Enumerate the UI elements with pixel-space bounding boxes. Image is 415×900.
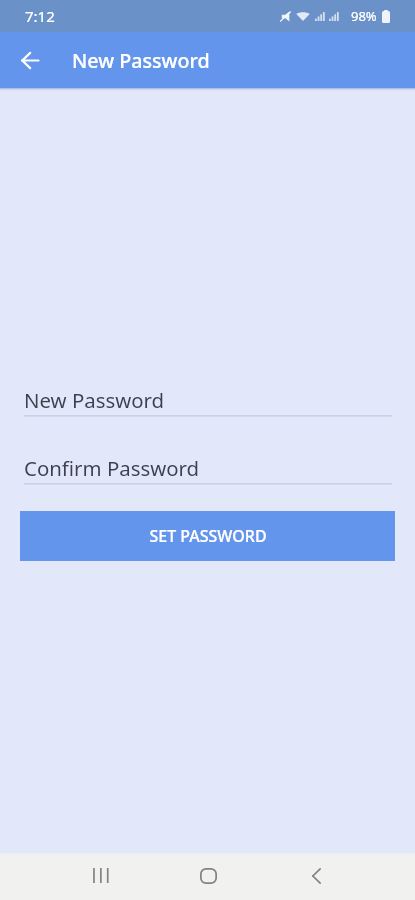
button[interactable]: Back bbox=[11, 41, 49, 79]
staticText: SET PASSWORD bbox=[149, 525, 267, 547]
button[interactable]: New Password bbox=[24, 386, 392, 418]
button[interactable]: Recent apps bbox=[70, 853, 130, 900]
button[interactable]: Confirm Password bbox=[24, 454, 392, 486]
staticText: Confirm Password bbox=[24, 454, 200, 482]
staticText: New Password bbox=[24, 386, 165, 414]
staticText: 98% bbox=[351, 7, 377, 25]
button[interactable]: SET PASSWORD bbox=[20, 511, 395, 561]
button[interactable]: Home bbox=[178, 853, 238, 900]
staticText: 7:12 bbox=[25, 6, 55, 26]
staticText: New Password bbox=[72, 47, 210, 74]
button[interactable]: Back bbox=[286, 853, 346, 900]
